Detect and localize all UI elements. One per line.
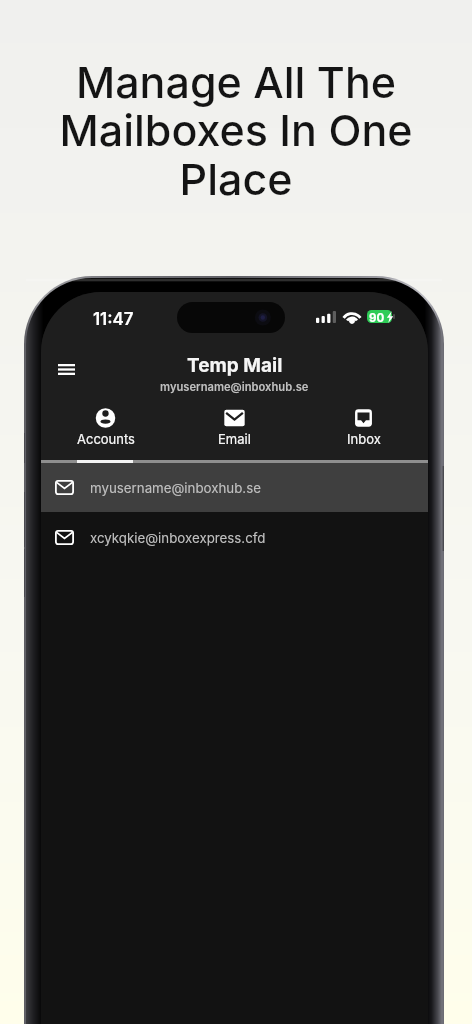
button[interactable]: Open navigation menu — [47, 350, 85, 388]
staticText: myusername@inboxhub.se — [160, 380, 309, 394]
staticText: Temp Mail — [187, 354, 283, 377]
button[interactable]: Accounts — [41, 402, 170, 460]
staticText: Accounts — [77, 431, 135, 447]
button[interactable]: xcykqkie@inboxexpress.cfd — [41, 512, 428, 563]
button[interactable]: myusername@inboxhub.se — [41, 463, 428, 512]
button[interactable]: Email — [170, 402, 299, 460]
staticText: xcykqkie@inboxexpress.cfd — [90, 530, 266, 546]
button[interactable]: Inbox — [299, 402, 428, 460]
staticText: Email — [218, 431, 251, 447]
staticText: 11:47 — [93, 309, 134, 329]
staticText: myusername@inboxhub.se — [90, 480, 261, 496]
staticText: 90 — [369, 311, 385, 325]
staticText: Inbox — [347, 431, 381, 447]
staticText: Manage All The Mailboxes In One Place — [34, 56, 438, 206]
